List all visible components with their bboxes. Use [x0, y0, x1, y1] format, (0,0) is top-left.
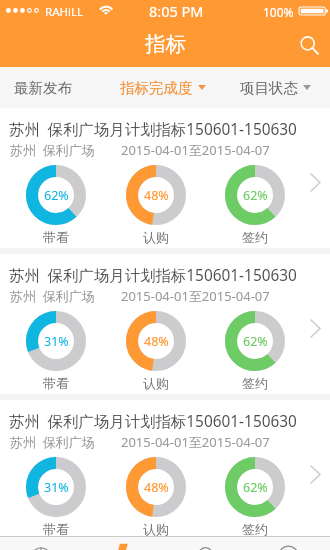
staticText: 62%	[243, 333, 268, 350]
staticText: 31%	[44, 479, 69, 496]
button[interactable]: Home	[0, 536, 82, 550]
staticText: 签约	[242, 375, 268, 391]
staticText: 带看	[43, 229, 69, 245]
staticText: RAHiLL	[45, 4, 84, 20]
staticText: 苏州 保利广场	[10, 287, 95, 305]
staticText: 2015-04-01至2015-04-07	[121, 433, 270, 451]
staticText: 指标完成度	[120, 79, 193, 97]
staticText: 2015-04-01至2015-04-07	[121, 287, 270, 305]
staticText: 签约	[242, 521, 268, 537]
staticText: 苏州 保利广场	[10, 433, 95, 451]
button[interactable]: Messages	[164, 536, 247, 550]
staticText: 苏州 保利广场月计划指标150601-150630	[9, 411, 297, 432]
button[interactable]: 项目状态	[219, 67, 330, 108]
staticText: 签约	[242, 229, 268, 245]
button[interactable]: 指标完成度	[106, 67, 219, 108]
button[interactable]: Search	[284, 20, 330, 67]
staticText: 苏州 保利广场月计划指标150601-150630	[9, 119, 297, 140]
staticText: 最新发布	[14, 79, 72, 97]
button[interactable]: 最新发布	[0, 67, 106, 108]
staticText: 苏州 保利广场	[10, 141, 95, 159]
staticText: 62%	[243, 187, 268, 204]
staticText: 认购	[143, 229, 169, 245]
staticText: 带看	[43, 375, 69, 391]
staticText: 48%	[144, 333, 169, 350]
staticText: 8:05 PM	[149, 1, 204, 21]
staticText: 2015-04-01至2015-04-07	[121, 141, 270, 159]
staticText: 62%	[243, 479, 268, 496]
staticText: 带看	[43, 521, 69, 537]
staticText: 31%	[44, 333, 69, 350]
staticText: 62%	[44, 187, 69, 204]
staticText: 认购	[143, 521, 169, 537]
staticText: 苏州 保利广场月计划指标150601-150630	[9, 265, 297, 286]
button[interactable]: 苏州 保利广场月计划指标150601-150630	[0, 400, 330, 540]
button[interactable]: 苏州 保利广场月计划指标150601-150630	[0, 108, 330, 248]
button[interactable]: Profile	[247, 536, 330, 550]
staticText: 48%	[144, 479, 169, 496]
staticText: 100%	[263, 4, 294, 20]
button[interactable]: 苏州 保利广场月计划指标150601-150630	[0, 254, 330, 394]
staticText: 指标	[145, 31, 186, 57]
staticText: 48%	[144, 187, 169, 204]
staticText: 认购	[143, 375, 169, 391]
button[interactable]: Indicators	[82, 536, 164, 550]
staticText: 项目状态	[240, 79, 298, 97]
